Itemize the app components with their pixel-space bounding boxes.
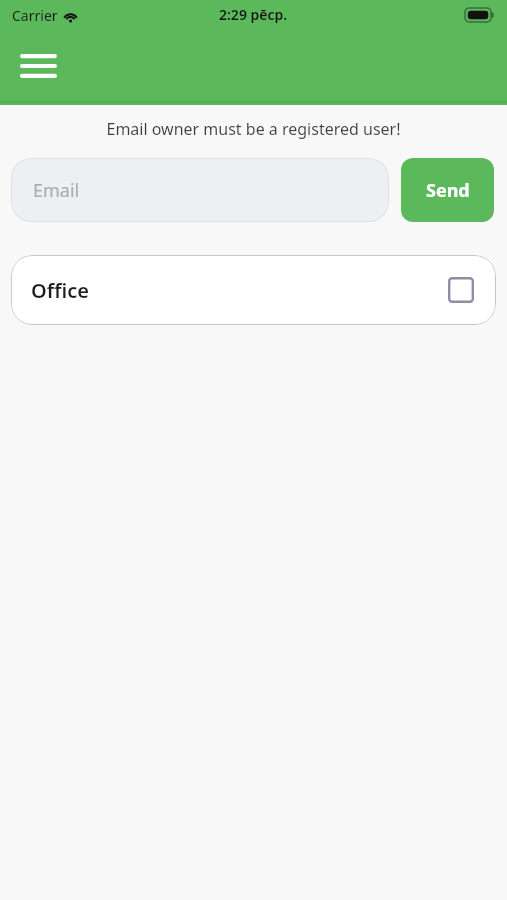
staticText: Send xyxy=(426,178,470,203)
button[interactable]: Email xyxy=(11,158,389,222)
staticText: 2:29 pēcp. xyxy=(219,5,288,24)
button[interactable]: Select Office xyxy=(443,272,479,308)
button[interactable]: Send xyxy=(401,158,494,222)
staticText: Office xyxy=(31,277,443,304)
staticText: Carrier xyxy=(12,6,58,25)
staticText: Email xyxy=(33,178,80,203)
button[interactable]: Office xyxy=(11,255,496,325)
button[interactable]: Open navigation menu xyxy=(14,46,62,86)
staticText: Email owner must be a registered user! xyxy=(0,118,507,140)
